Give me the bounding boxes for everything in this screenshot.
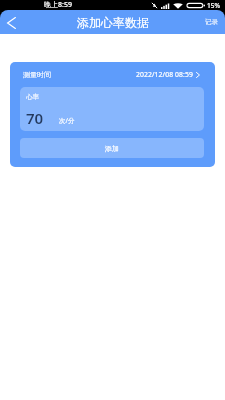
button[interactable]: 添加 bbox=[20, 138, 204, 158]
button[interactable]: 测量时间 bbox=[10, 62, 215, 87]
staticText: 晚上8:59 bbox=[44, 0, 72, 10]
staticText: 添加 bbox=[105, 144, 119, 153]
staticText: 测量时间 bbox=[23, 70, 51, 79]
staticText: 15% bbox=[207, 1, 220, 10]
staticText: 70 bbox=[26, 108, 44, 128]
staticText: 记录 bbox=[205, 18, 218, 26]
button[interactable]: 心率 bbox=[20, 87, 204, 131]
staticText: 次/分 bbox=[59, 116, 75, 125]
staticText: 2022/12/08 08:59 bbox=[136, 70, 193, 79]
staticText: 添加心率数据 bbox=[77, 15, 149, 30]
button[interactable]: 记录 bbox=[198, 10, 225, 34]
button[interactable]: Back bbox=[0, 10, 22, 34]
staticText: 心率 bbox=[26, 93, 39, 101]
